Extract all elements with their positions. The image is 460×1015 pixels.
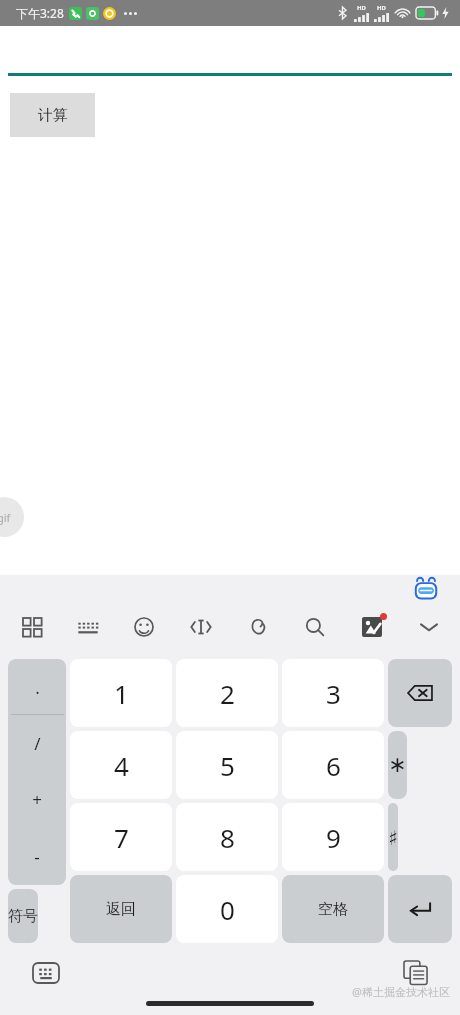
button[interactable]: 9 bbox=[282, 803, 384, 871]
button[interactable]: 1 bbox=[70, 659, 172, 727]
staticText: / bbox=[34, 732, 41, 755]
button[interactable]: Search bbox=[293, 605, 337, 649]
staticText: 4 bbox=[114, 748, 129, 783]
button[interactable]: Cursor control bbox=[179, 605, 223, 649]
button[interactable]: 6 bbox=[282, 731, 384, 799]
button[interactable]: 返回 bbox=[70, 875, 172, 943]
button[interactable]: 8 bbox=[176, 803, 278, 871]
button[interactable]: Emoji bbox=[122, 605, 166, 649]
button[interactable]: 3 bbox=[282, 659, 384, 727]
button[interactable]: 5 bbox=[176, 731, 278, 799]
staticText: - bbox=[34, 845, 40, 868]
staticText: 计算 bbox=[38, 106, 68, 125]
button[interactable]: Enter bbox=[388, 875, 452, 943]
staticText: 7 bbox=[114, 820, 129, 855]
button[interactable]: ∗ bbox=[388, 731, 407, 799]
button[interactable]: Switch keyboard bbox=[28, 955, 64, 991]
staticText: 下午3:28 bbox=[16, 5, 64, 21]
staticText: 2 bbox=[220, 676, 235, 711]
button[interactable]: Attachment bbox=[236, 605, 280, 649]
staticText: 6 bbox=[326, 748, 341, 783]
staticText: HD bbox=[377, 4, 386, 12]
staticText: 8 bbox=[220, 820, 235, 855]
staticText: 0 bbox=[220, 892, 235, 927]
staticText: 空格 bbox=[318, 900, 348, 919]
button[interactable]: Backspace bbox=[388, 659, 452, 727]
staticText: + bbox=[32, 788, 42, 811]
button[interactable]: 符号 bbox=[8, 889, 38, 943]
button[interactable]: Collapse keyboard bbox=[407, 605, 451, 649]
button[interactable]: 0 bbox=[176, 875, 278, 943]
staticText: 9 bbox=[326, 820, 341, 855]
staticText: gif bbox=[0, 510, 11, 525]
button[interactable]: ♯ bbox=[388, 803, 398, 871]
staticText: 3 bbox=[326, 676, 341, 711]
button[interactable]: + bbox=[8, 771, 66, 828]
button[interactable]: / bbox=[8, 715, 66, 771]
button[interactable]: AI assistant bbox=[410, 575, 442, 605]
button[interactable]: - bbox=[8, 828, 66, 885]
staticText: 1 bbox=[114, 676, 129, 711]
button[interactable]: 计算 bbox=[10, 93, 95, 137]
staticText: 符号 bbox=[8, 907, 38, 926]
button[interactable]: 4 bbox=[70, 731, 172, 799]
button[interactable]: 7 bbox=[70, 803, 172, 871]
button[interactable]: Apps bbox=[10, 605, 54, 649]
staticText: ∗ bbox=[388, 752, 407, 778]
button[interactable]: 空格 bbox=[282, 875, 384, 943]
staticText: 5 bbox=[220, 748, 235, 783]
button[interactable]: Stickers bbox=[350, 605, 394, 649]
staticText: @稀土掘金技术社区 bbox=[352, 984, 450, 999]
button[interactable]: Clipboard bbox=[398, 955, 434, 991]
staticText: ♯ bbox=[388, 826, 398, 849]
staticText: HD bbox=[357, 4, 366, 12]
button[interactable]: Keyboard layout bbox=[66, 605, 110, 649]
staticText: . bbox=[35, 676, 40, 699]
staticText: 返回 bbox=[106, 900, 136, 919]
button[interactable]: 2 bbox=[176, 659, 278, 727]
button[interactable]: . bbox=[8, 659, 66, 715]
